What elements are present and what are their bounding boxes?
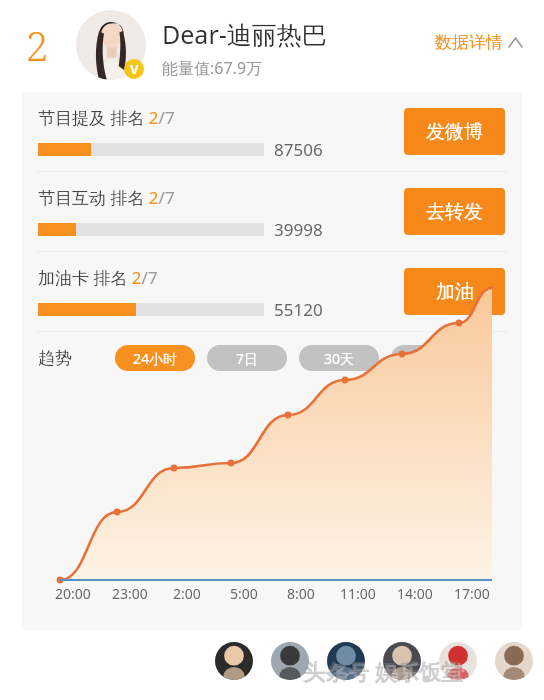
button[interactable]: 数据详情: [435, 32, 522, 53]
button[interactable]: 累计: [391, 345, 471, 371]
button[interactable]: 去转发: [404, 188, 505, 235]
staticText: 8:00: [287, 584, 315, 603]
staticText: 节目提及 排名 2/7: [38, 106, 175, 129]
staticText: 头条号 娱乐饭堂: [305, 658, 465, 688]
staticText: 发微博: [426, 120, 483, 144]
button[interactable]: 用户头像: [327, 642, 365, 680]
button[interactable]: 30天: [299, 345, 379, 371]
staticText: 头条号 娱乐饭堂: [303, 656, 463, 686]
staticText: 39998: [274, 218, 323, 241]
button[interactable]: 用户头像: [383, 642, 421, 680]
staticText: 23:00: [112, 584, 148, 603]
staticText: 11:00: [340, 584, 376, 603]
staticText: 30天: [324, 349, 355, 368]
staticText: 去转发: [426, 200, 483, 224]
staticText: 14:00: [397, 584, 433, 603]
staticText: V: [130, 60, 139, 78]
button[interactable]: 7日: [207, 345, 287, 371]
staticText: 5:00: [230, 584, 258, 603]
button[interactable]: 用户头像: [271, 642, 309, 680]
staticText: 加油卡 排名 2/7: [38, 266, 158, 289]
staticText: 2:00: [173, 584, 201, 603]
button[interactable]: 用户头像: [439, 642, 477, 680]
staticText: Dear-迪丽热巴: [162, 17, 327, 51]
staticText: 17:00: [454, 584, 490, 603]
staticText: 累计: [417, 349, 445, 367]
button[interactable]: 发微博: [404, 108, 505, 155]
staticText: 24小时: [133, 349, 178, 368]
button[interactable]: 加油: [404, 268, 505, 315]
staticText: 能量值:67.9万: [162, 57, 263, 79]
staticText: 节目互动 排名 2/7: [38, 186, 175, 209]
button[interactable]: 24小时: [115, 345, 195, 371]
staticText: 87506: [274, 138, 323, 161]
button[interactable]: 用户头像: [495, 642, 533, 680]
staticText: 7日: [236, 349, 259, 368]
staticText: 2: [26, 18, 49, 72]
staticText: 55120: [274, 298, 323, 321]
staticText: 数据详情: [435, 32, 503, 53]
staticText: 加油: [436, 280, 474, 304]
button[interactable]: 用户头像: [215, 642, 253, 680]
staticText: 趋势: [38, 348, 72, 369]
staticText: 20:00: [55, 584, 91, 603]
